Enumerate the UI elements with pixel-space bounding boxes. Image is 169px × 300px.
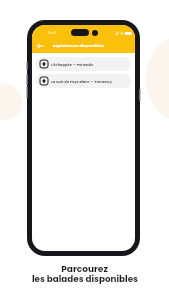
staticText: Parcourez [61, 263, 108, 276]
staticText: L'échappée — Péruwelz [51, 62, 94, 67]
button[interactable]: L'échappée — Péruwelz [36, 57, 131, 71]
staticText: Expériences disponibles [53, 43, 105, 49]
staticText: 9:41 [48, 30, 57, 36]
staticText: les balades disponibles [32, 273, 138, 285]
button[interactable]: La Nuit du Pays Blanc — Fontenoy [36, 74, 131, 88]
staticText: La Nuit du Pays Blanc — Fontenoy [51, 79, 112, 84]
button[interactable]: Back [35, 41, 45, 51]
